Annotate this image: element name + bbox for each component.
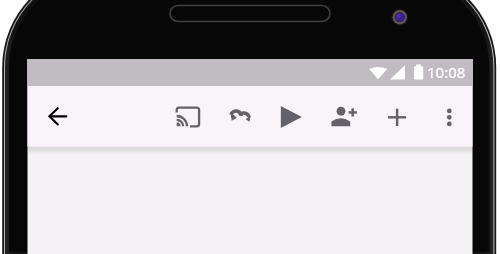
button[interactable]: More options: [425, 93, 473, 141]
button[interactable]: Navigate up: [33, 92, 81, 140]
staticText: 10:08: [427, 62, 466, 82]
button[interactable]: Cast: [163, 93, 211, 141]
button[interactable]: Swap: [216, 92, 264, 140]
button[interactable]: Add: [373, 93, 421, 141]
button[interactable]: Play: [267, 93, 315, 141]
button[interactable]: Add person: [319, 92, 367, 140]
